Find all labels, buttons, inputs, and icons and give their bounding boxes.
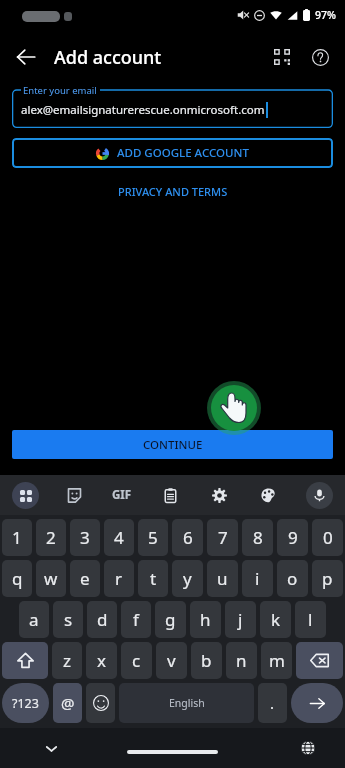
- button[interactable]: 3: [70, 519, 100, 556]
- staticText: alex@emailsignaturerescue.onmicrosoft.co…: [21, 102, 265, 118]
- staticText: o: [287, 567, 298, 590]
- button[interactable]: 6: [172, 519, 203, 556]
- button[interactable]: Clipboard: [146, 475, 195, 515]
- button[interactable]: PRIVACY AND TERMS: [110, 181, 236, 202]
- staticText: j: [238, 608, 243, 631]
- staticText: a: [29, 608, 39, 631]
- staticText: 8: [253, 526, 263, 549]
- button[interactable]: English: [119, 683, 254, 723]
- staticText: 0: [323, 526, 333, 549]
- button[interactable]: x: [86, 642, 117, 679]
- button[interactable]: Scan QR code: [263, 38, 301, 76]
- staticText: s: [64, 608, 73, 631]
- button[interactable]: f: [121, 601, 151, 638]
- button[interactable]: s: [53, 601, 83, 638]
- button[interactable]: Voice input: [293, 475, 345, 515]
- button[interactable]: 2: [36, 519, 66, 556]
- button[interactable]: v: [156, 642, 187, 679]
- button[interactable]: 7: [207, 519, 238, 556]
- button[interactable]: Change language: [293, 733, 323, 763]
- staticText: c: [132, 649, 141, 672]
- button[interactable]: ?123: [2, 683, 49, 723]
- button[interactable]: a: [19, 601, 49, 638]
- button[interactable]: Themes: [244, 475, 293, 515]
- staticText: ?123: [12, 695, 39, 712]
- button[interactable]: 0: [312, 519, 343, 556]
- button[interactable]: 8: [242, 519, 273, 556]
- button[interactable]: Stickers: [50, 475, 98, 515]
- staticText: .: [270, 693, 275, 713]
- button[interactable]: b: [191, 642, 222, 679]
- button[interactable]: Next: [291, 683, 343, 723]
- staticText: h: [200, 608, 211, 631]
- button[interactable]: p: [312, 560, 343, 597]
- staticText: e: [80, 567, 90, 590]
- staticText: 1: [12, 526, 22, 549]
- staticText: t: [150, 567, 157, 590]
- button[interactable]: r: [104, 560, 134, 597]
- button[interactable]: h: [190, 601, 221, 638]
- button[interactable]: i: [242, 560, 273, 597]
- staticText: 3: [80, 526, 90, 549]
- button[interactable]: l: [295, 601, 326, 638]
- button[interactable]: 1: [2, 519, 32, 556]
- staticText: f: [133, 608, 139, 631]
- staticText: 97%: [315, 8, 336, 22]
- button[interactable]: y: [172, 560, 203, 597]
- staticText: v: [167, 649, 176, 672]
- staticText: 9: [288, 526, 298, 549]
- button[interactable]: Back: [8, 39, 44, 75]
- button[interactable]: Help: [301, 38, 339, 76]
- button[interactable]: GIF: [98, 475, 146, 515]
- staticText: p: [322, 567, 333, 590]
- button[interactable]: Settings: [195, 475, 244, 515]
- button[interactable]: q: [2, 560, 32, 597]
- button[interactable]: m: [261, 642, 292, 679]
- staticText: CONTINUE: [143, 437, 203, 453]
- staticText: b: [201, 649, 212, 672]
- button[interactable]: w: [36, 560, 66, 597]
- button[interactable]: t: [138, 560, 168, 597]
- staticText: m: [269, 649, 285, 672]
- button[interactable]: c: [121, 642, 152, 679]
- button[interactable]: n: [226, 642, 257, 679]
- button[interactable]: ADD GOOGLE ACCOUNT: [12, 138, 333, 168]
- button[interactable]: z: [52, 642, 82, 679]
- button[interactable]: @: [53, 683, 82, 723]
- button[interactable]: k: [260, 601, 291, 638]
- staticText: 5: [148, 526, 158, 549]
- staticText: ADD GOOGLE ACCOUNT: [117, 145, 249, 161]
- staticText: 6: [183, 526, 193, 549]
- button[interactable]: e: [70, 560, 100, 597]
- staticText: k: [271, 608, 281, 631]
- staticText: i: [255, 567, 260, 590]
- button[interactable]: u: [207, 560, 238, 597]
- staticText: d: [97, 608, 108, 631]
- button[interactable]: j: [225, 601, 256, 638]
- staticText: y: [183, 567, 192, 590]
- button[interactable]: 9: [277, 519, 308, 556]
- staticText: n: [236, 649, 247, 672]
- staticText: 2: [46, 526, 56, 549]
- staticText: GIF: [112, 487, 132, 503]
- staticText: q: [12, 567, 23, 590]
- staticText: l: [308, 608, 313, 631]
- button[interactable]: .: [258, 683, 287, 723]
- button[interactable]: 4: [104, 519, 134, 556]
- staticText: PRIVACY AND TERMS: [118, 184, 228, 199]
- button[interactable]: 5: [138, 519, 168, 556]
- button[interactable]: Emoji: [86, 683, 115, 723]
- button[interactable]: d: [87, 601, 117, 638]
- staticText: r: [115, 567, 123, 590]
- button[interactable]: o: [277, 560, 308, 597]
- staticText: z: [63, 649, 71, 672]
- staticText: x: [97, 649, 106, 672]
- button[interactable]: Keyboard toolbar: [0, 475, 50, 515]
- button[interactable]: CONTINUE: [12, 430, 333, 459]
- button[interactable]: Shift: [2, 642, 48, 679]
- staticText: 7: [218, 526, 228, 549]
- button[interactable]: Hide keyboard: [35, 732, 67, 764]
- staticText: g: [165, 608, 176, 631]
- button[interactable]: g: [155, 601, 186, 638]
- button[interactable]: Backspace: [296, 642, 343, 679]
